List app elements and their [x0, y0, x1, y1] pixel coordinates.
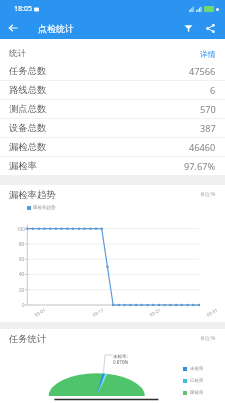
- staticText: 18:05: [14, 4, 32, 14]
- button[interactable]: Share: [199, 17, 221, 39]
- staticText: 设备总数: [9, 122, 47, 134]
- staticText: 未检率:: [113, 353, 128, 359]
- staticText: 0.876%: [113, 359, 129, 365]
- button[interactable]: 测点总数: [0, 100, 225, 119]
- staticText: 60: [19, 256, 25, 262]
- staticText: 单位:%: [200, 191, 216, 198]
- button[interactable]: 漏检总数: [0, 138, 225, 157]
- staticText: 路线总数: [9, 84, 47, 96]
- staticText: 03-01: [33, 306, 47, 318]
- staticText: 漏检率趋势: [9, 189, 56, 201]
- staticText: 统计: [9, 48, 26, 59]
- staticText: 0: [22, 302, 25, 308]
- staticText: 点检统计: [38, 23, 74, 34]
- staticText: 漏检率: [190, 390, 204, 396]
- staticText: 漏检率趋势: [33, 205, 56, 211]
- staticText: 387: [200, 122, 216, 135]
- staticText: 未检率: [190, 366, 204, 372]
- button[interactable]: 详情: [200, 49, 216, 59]
- staticText: 100: [17, 226, 25, 232]
- button[interactable]: 漏检率: [0, 157, 225, 176]
- staticText: 47566: [189, 65, 216, 78]
- staticText: 03-21: [148, 306, 162, 318]
- button[interactable]: Filter: [177, 17, 199, 39]
- staticText: 03-31: [205, 306, 219, 318]
- button[interactable]: 任务总数: [0, 62, 225, 81]
- staticText: 任务总数: [9, 65, 47, 77]
- staticText: 6: [210, 84, 216, 97]
- staticText: 详情: [200, 49, 216, 59]
- staticText: 漏检率: [9, 160, 37, 172]
- staticText: 03-11: [91, 306, 105, 318]
- staticText: 570: [200, 103, 216, 116]
- button[interactable]: 设备总数: [0, 119, 225, 138]
- staticText: 20: [19, 287, 25, 293]
- staticText: 已检率: [190, 378, 204, 384]
- staticText: 测点总数: [9, 103, 47, 115]
- staticText: 任务统计: [9, 333, 47, 345]
- button[interactable]: 路线总数: [0, 81, 225, 100]
- staticText: 40: [19, 271, 25, 277]
- button[interactable]: Back: [0, 17, 26, 39]
- staticText: 46460: [189, 141, 216, 154]
- staticText: 单位:%: [200, 335, 216, 342]
- staticText: 漏检总数: [9, 141, 47, 153]
- staticText: 80: [19, 241, 25, 247]
- staticText: 97.67%: [184, 160, 216, 173]
